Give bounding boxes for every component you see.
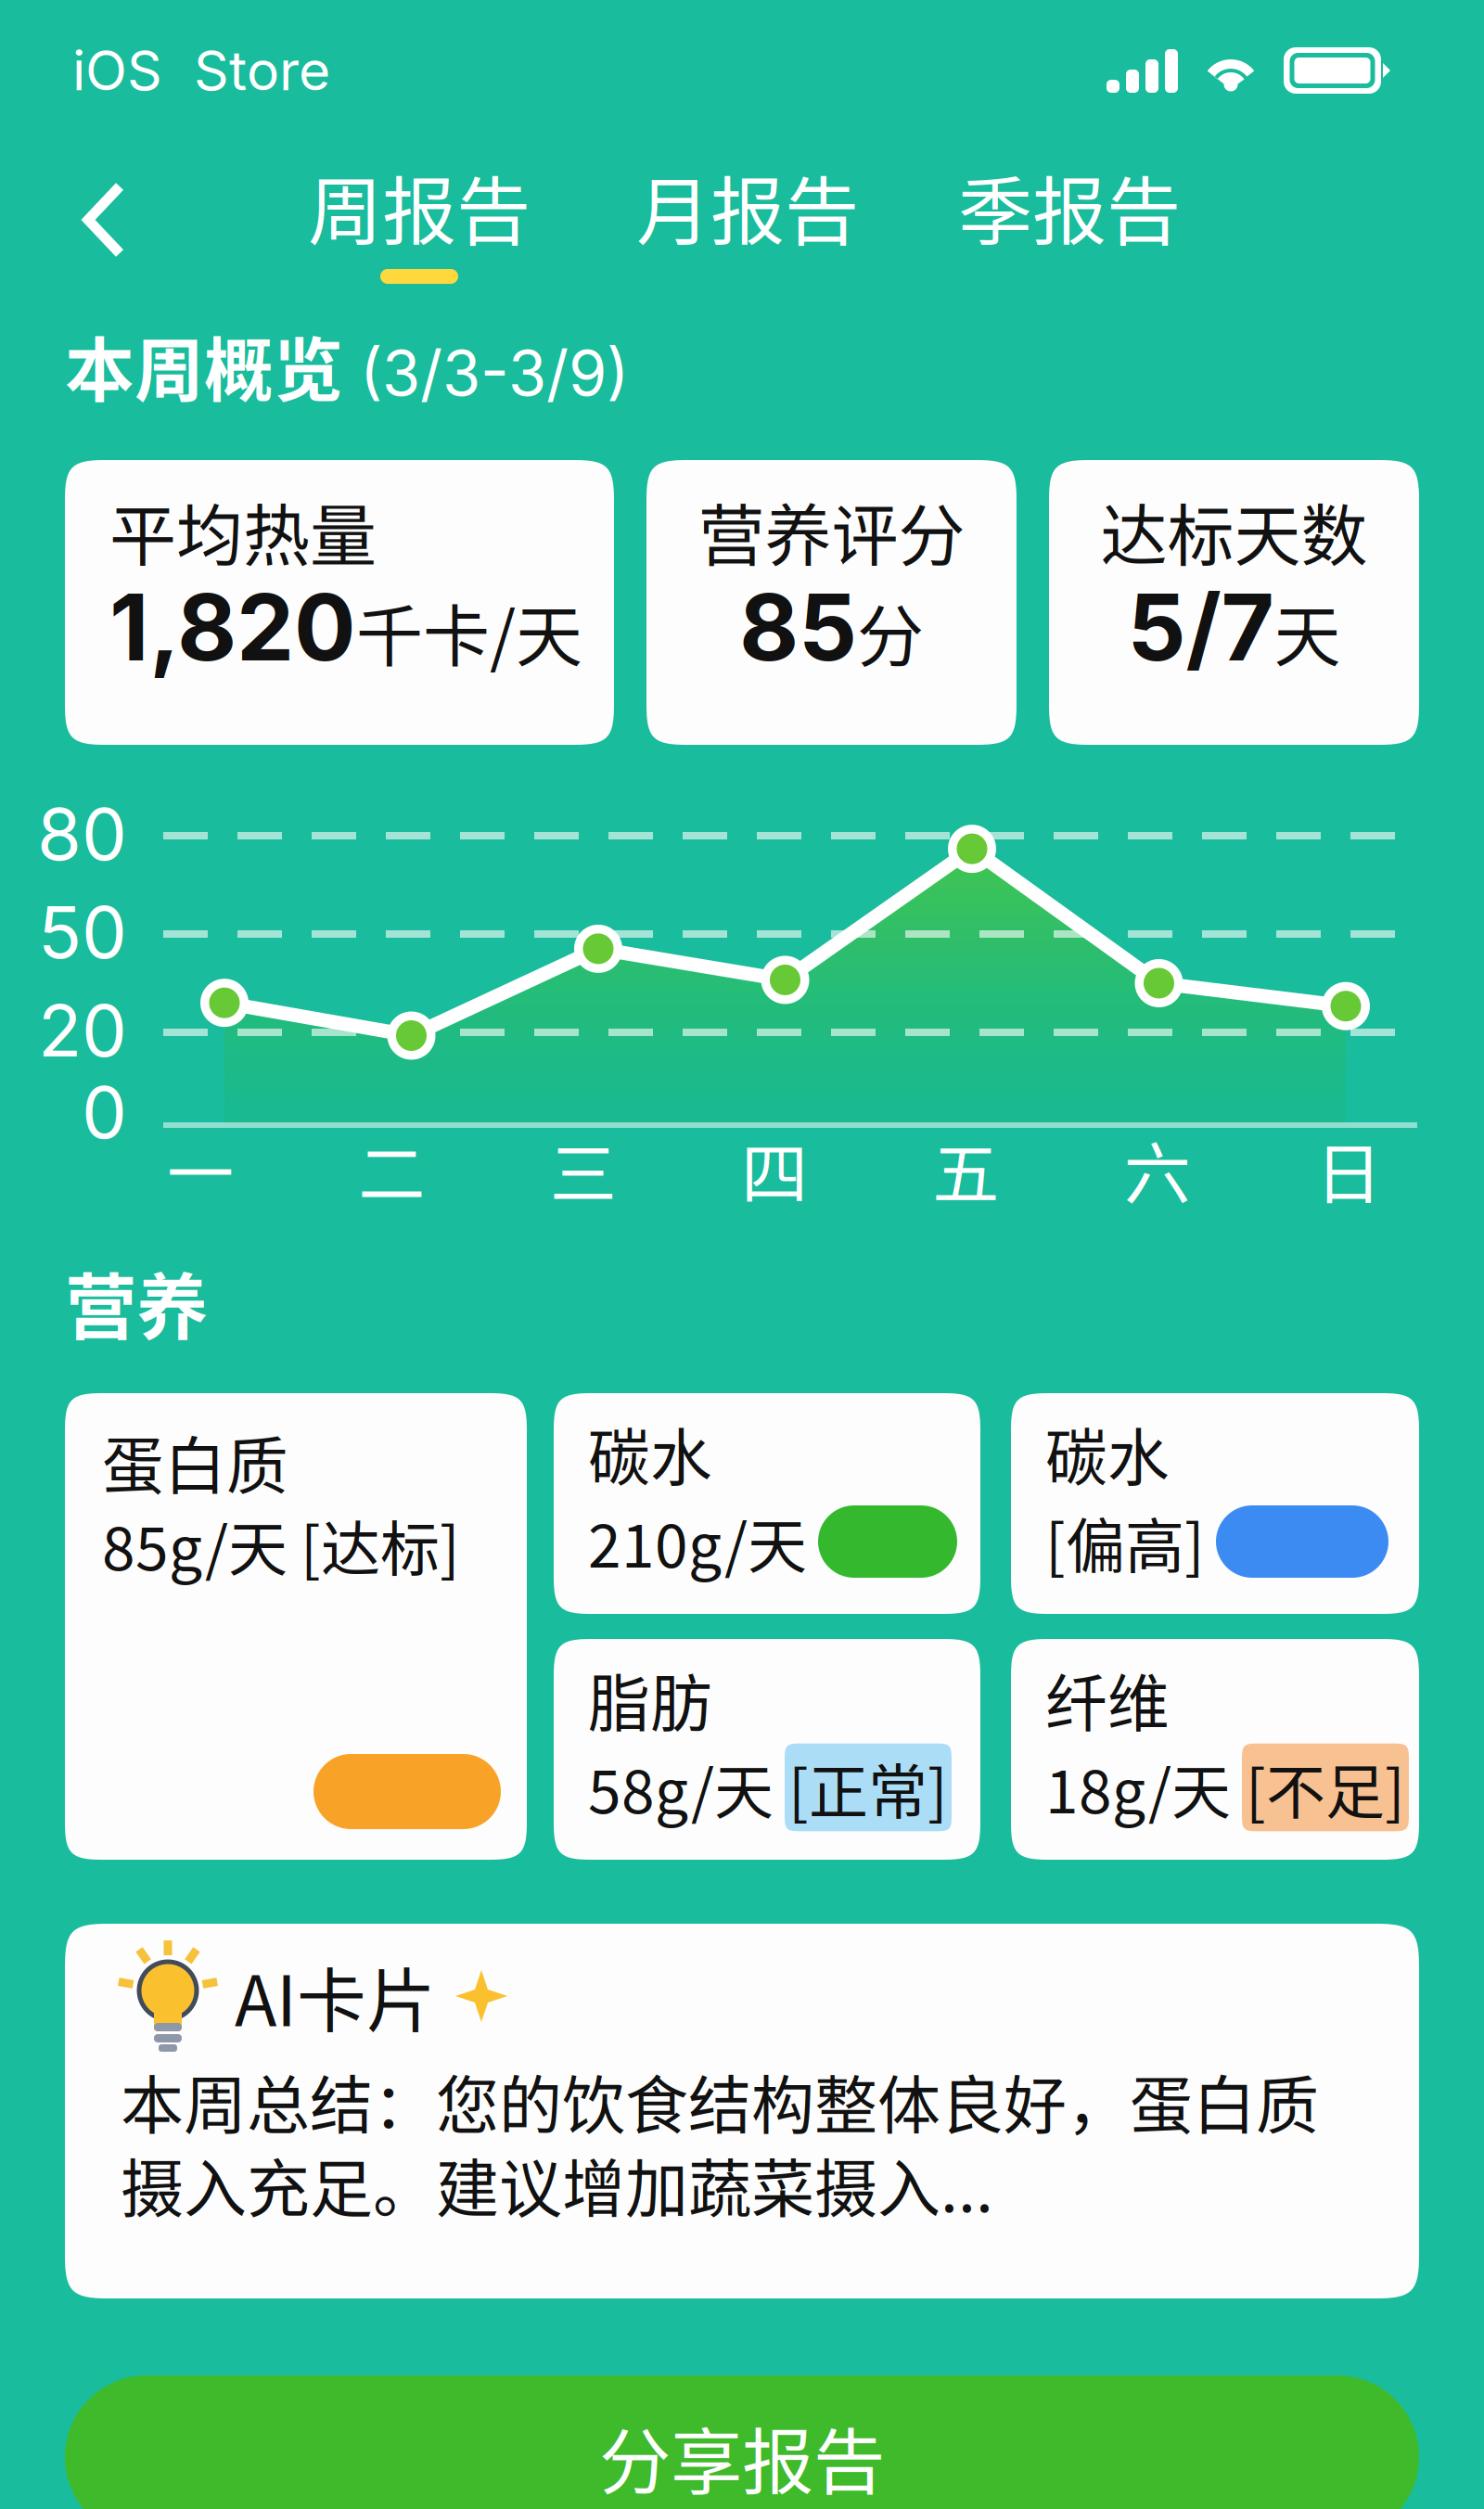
staticText: 营养评分 [698, 482, 965, 579]
staticText: 蛋白质 [102, 1417, 288, 1507]
staticText: 一 [167, 1120, 234, 1217]
staticText: 5/7 [1127, 572, 1274, 682]
staticText: 85 [739, 572, 857, 682]
staticText: 50 [38, 889, 127, 976]
staticText: 20 [38, 987, 127, 1074]
button[interactable]: 周报告 [299, 163, 540, 284]
staticText: 天 [1274, 583, 1341, 680]
staticText: 0 [82, 1069, 127, 1156]
staticText: [正常] [788, 1744, 948, 1830]
staticText: 碳水 [1045, 1409, 1170, 1498]
staticText: [不足] [1246, 1744, 1405, 1830]
staticText: [偏高] [1045, 1499, 1205, 1585]
staticText: 80 [37, 790, 127, 877]
staticText: 日 [1315, 1120, 1382, 1217]
button[interactable]: 季报告 [949, 163, 1190, 284]
staticText: 1,820 [109, 572, 356, 682]
staticText: 本周概览 [65, 315, 343, 416]
staticText: 本周总结：您的饮食结构整体良好，蛋白质 [121, 2055, 1319, 2147]
staticText: 18g/天 [1045, 1744, 1231, 1830]
button[interactable]: Back [50, 158, 158, 282]
staticText: 分享报告 [599, 2405, 885, 2509]
staticText: iOS Store [72, 38, 330, 103]
staticText: AI卡片 [235, 1946, 436, 2046]
staticText: 四 [741, 1120, 808, 1217]
staticText: 平均热量 [109, 482, 377, 579]
staticText: 季报告 [958, 152, 1181, 260]
staticText: 分 [857, 583, 924, 680]
staticText: 58g/天 [588, 1744, 774, 1830]
staticText: 周报告 [308, 152, 531, 260]
staticText: 二 [358, 1120, 425, 1217]
staticText: 摄入充足。建议增加蔬菜摄入... [121, 2139, 993, 2230]
staticText: 六 [1124, 1120, 1191, 1217]
button[interactable]: 分享报告 [65, 2375, 1419, 2509]
staticText: 千卡/天 [356, 583, 582, 680]
staticText: 脂肪 [588, 1654, 712, 1744]
staticText: (3/3-3/9) [360, 336, 629, 411]
staticText: 85g/天 [达标] [102, 1501, 460, 1587]
staticText: 月报告 [636, 152, 859, 260]
staticText: 碳水 [588, 1409, 712, 1498]
staticText: 达标天数 [1100, 482, 1368, 579]
staticText: 营养 [65, 1250, 208, 1354]
staticText: 210g/天 [588, 1499, 807, 1585]
button[interactable]: 月报告 [627, 163, 868, 284]
staticText: 纤维 [1045, 1654, 1170, 1744]
staticText: 三 [550, 1120, 617, 1217]
staticText: 五 [932, 1120, 999, 1217]
